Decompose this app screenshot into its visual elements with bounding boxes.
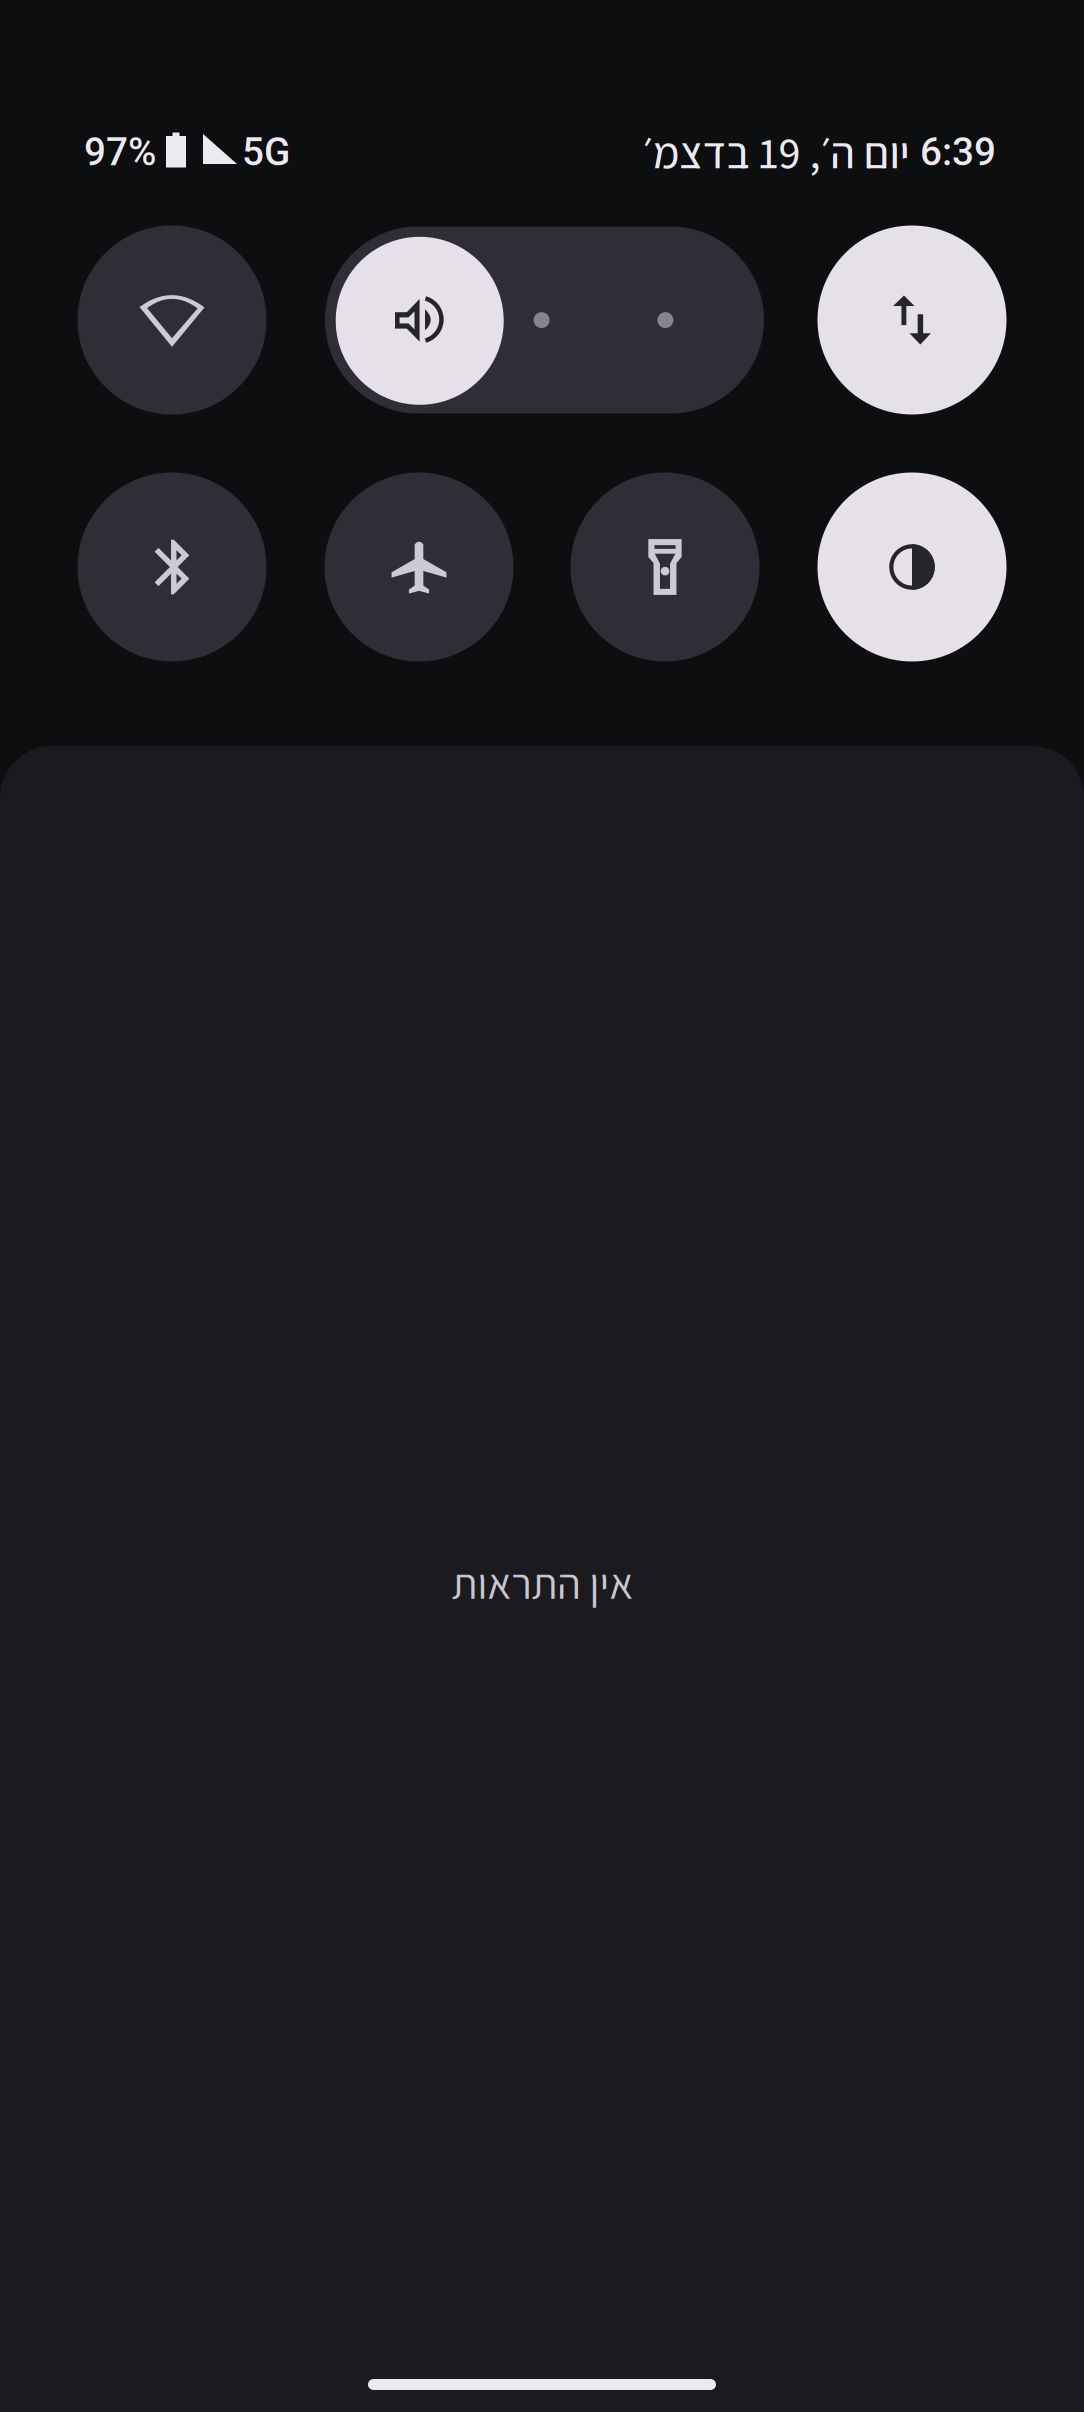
staticText: יום ה׳, 19 בדצמ׳	[642, 123, 909, 181]
button[interactable]: Dark theme	[817, 472, 1006, 661]
button[interactable]: Mobile data	[817, 225, 1006, 414]
button[interactable]: Wi‑Fi	[77, 225, 266, 414]
staticText: 97%	[84, 129, 156, 175]
button[interactable]: Airplane mode	[324, 472, 513, 661]
button[interactable]: Flashlight	[570, 472, 759, 661]
button[interactable]: Bluetooth	[77, 472, 266, 661]
staticText: 5G	[242, 129, 290, 175]
staticText: 6:39	[920, 129, 996, 175]
button[interactable]: Volume	[325, 226, 764, 413]
staticText: אין התראות	[451, 1555, 633, 1611]
